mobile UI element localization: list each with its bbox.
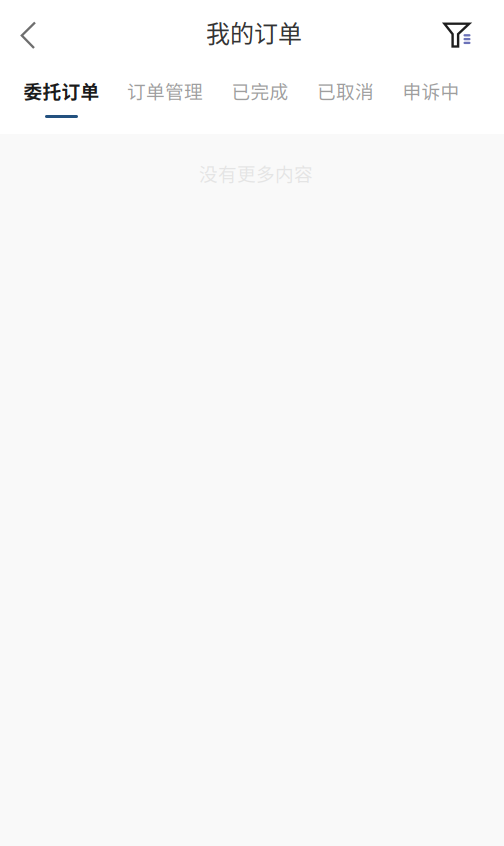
staticText: 已完成 [231, 77, 288, 104]
button[interactable]: Filter [434, 11, 480, 59]
staticText: 委托订单 [23, 77, 99, 104]
button[interactable]: Back [5, 11, 51, 59]
staticText: 没有更多内容 [199, 159, 313, 186]
button[interactable]: 已取消 [303, 70, 388, 134]
staticText: 我的订单 [206, 15, 302, 49]
staticText: 已取消 [317, 77, 374, 104]
staticText: 申诉中 [402, 77, 459, 104]
button[interactable]: 已完成 [217, 70, 302, 134]
button[interactable]: 订单管理 [122, 70, 207, 134]
button[interactable]: 申诉中 [388, 70, 473, 134]
staticText: 订单管理 [127, 77, 203, 104]
button[interactable]: 委托订单 [19, 70, 104, 134]
